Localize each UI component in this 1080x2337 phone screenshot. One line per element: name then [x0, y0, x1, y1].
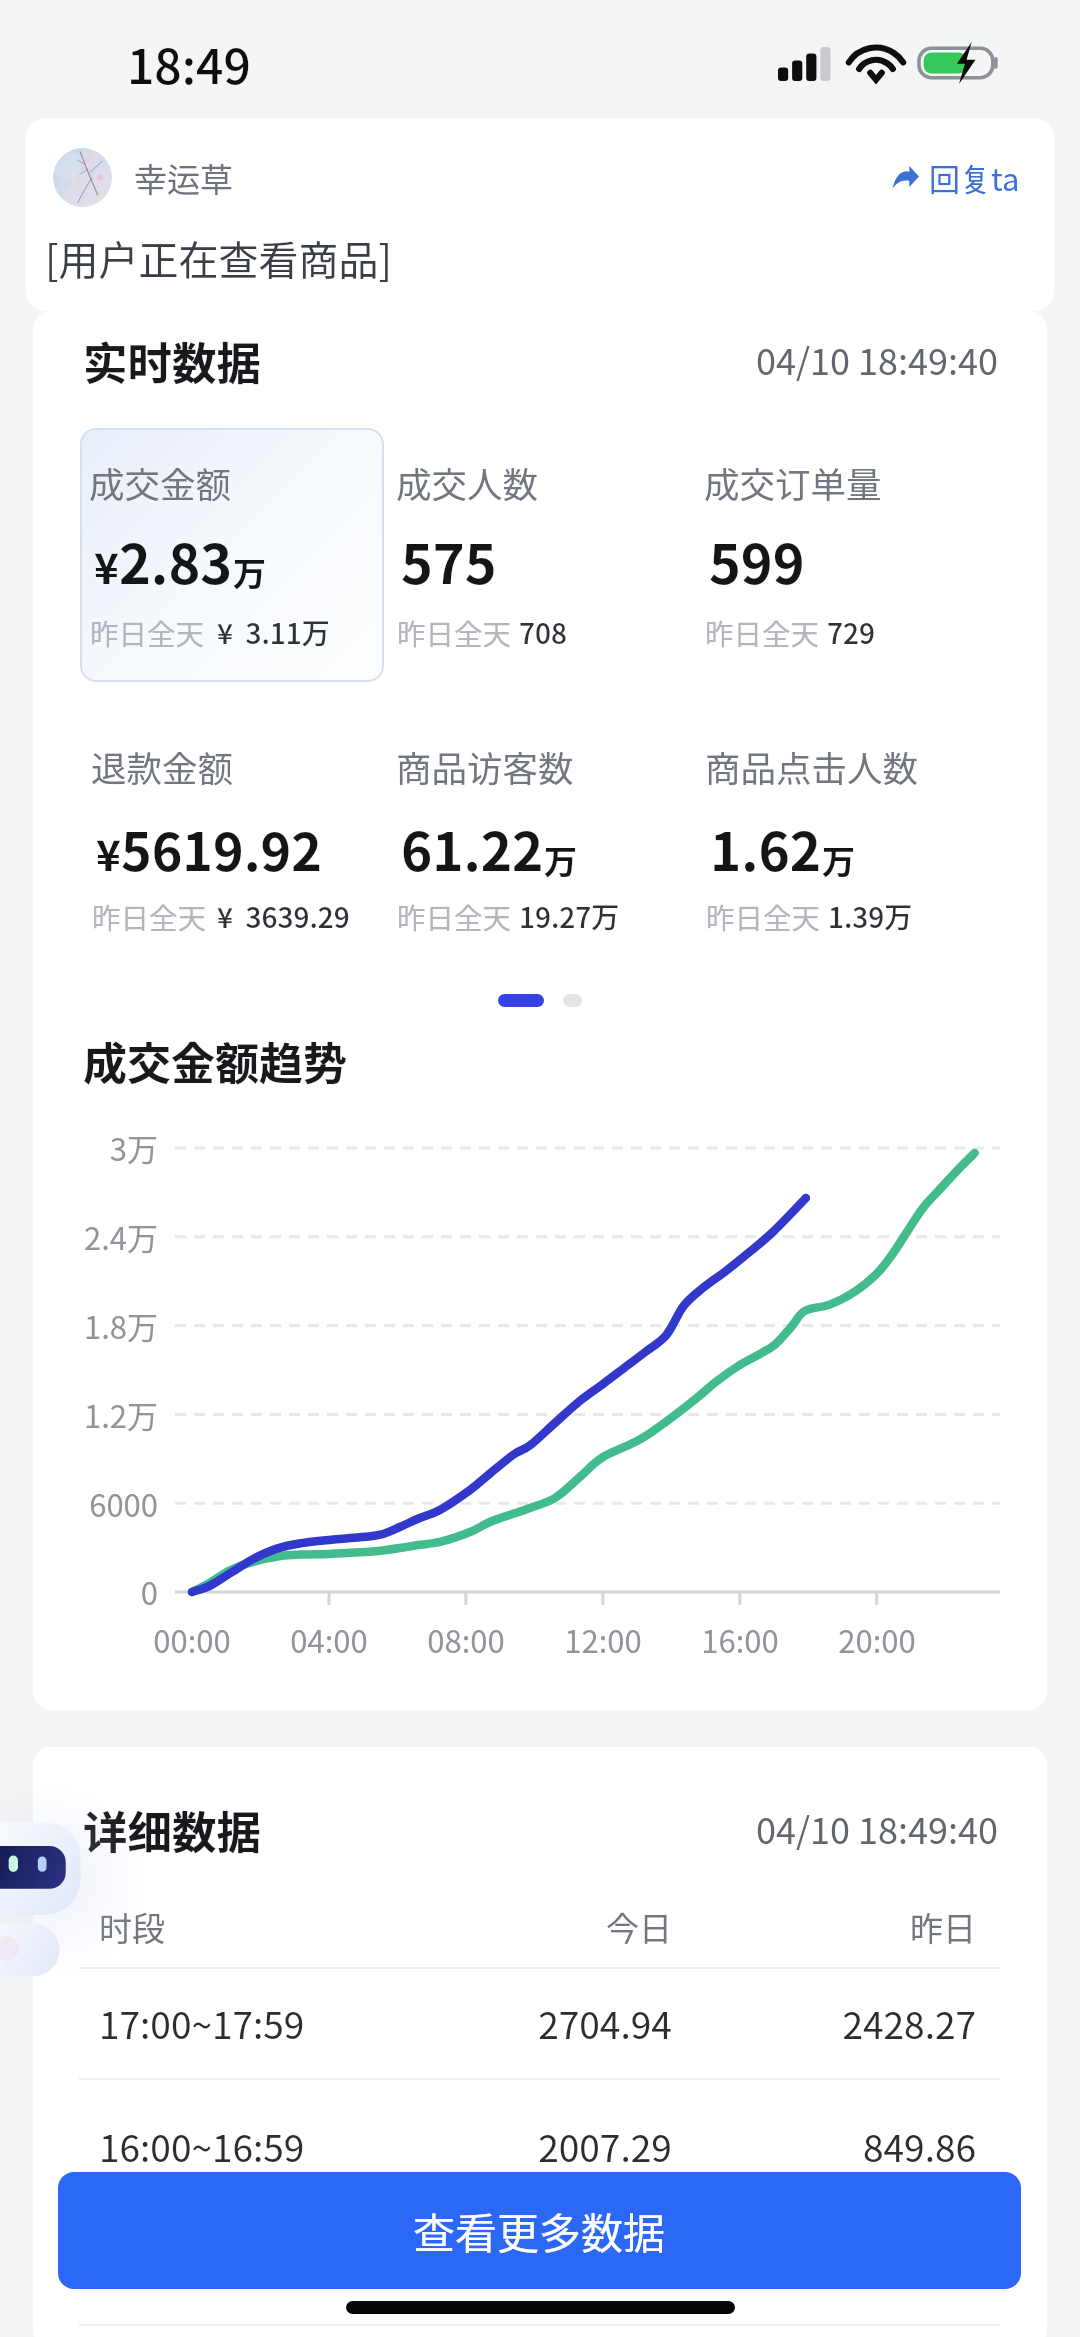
staticText: 849.86 [576, 2119, 976, 2173]
button[interactable] [80, 428, 384, 682]
staticText: 729 [827, 612, 875, 653]
staticText: 3万 [33, 1125, 158, 1170]
staticText: 详细数据 [83, 1797, 262, 1861]
staticText: 查看更多数据 [413, 2200, 666, 2261]
button[interactable]: Reply [892, 155, 1020, 200]
staticText: 成交金额趋势 [83, 1029, 347, 1093]
staticText: 昨日 [576, 1903, 976, 1951]
staticText: 0 [33, 1569, 158, 1614]
staticText: 575 [401, 521, 497, 599]
staticText: 08:00 [376, 1617, 556, 1662]
staticText: ¥ 3.11万 [217, 612, 330, 653]
staticText: 昨日全天 [706, 896, 821, 937]
staticText: 1.2万 [33, 1392, 158, 1437]
staticText: 2428.27 [576, 1996, 976, 2050]
staticText: 2.4万 [33, 1214, 158, 1259]
staticText: 成交人数 [396, 457, 539, 508]
button[interactable]: 查看更多数据 [58, 2172, 1021, 2289]
other: Reply [892, 166, 919, 190]
button[interactable] [79, 1968, 1000, 2078]
staticText: 退款金额 [91, 741, 234, 792]
staticText: 04/10 18:49:40 [33, 333, 998, 385]
staticText: 昨日全天 [397, 896, 512, 937]
staticText: [用户正在查看商品] [45, 229, 393, 287]
staticText: ¥ [96, 822, 121, 883]
button[interactable] [79, 2091, 1000, 2201]
staticText: ¥ 3639.29 [217, 896, 350, 937]
staticText: 12:00 [513, 1617, 693, 1662]
staticText: 16:00~16:59 [99, 2119, 305, 2173]
staticText: 成交金额 [89, 457, 232, 508]
staticText: 2007.29 [405, 2119, 805, 2173]
staticText: 成交订单量 [704, 457, 882, 508]
staticText: 昨日全天 [90, 612, 205, 653]
staticText: 万 [544, 836, 577, 884]
staticText: 昨日全天 [92, 896, 207, 937]
staticText: 04/10 18:49:40 [33, 1802, 998, 1854]
staticText: 5619.92 [121, 811, 322, 886]
staticText: 599 [709, 521, 805, 599]
staticText: 1.62 [710, 810, 822, 887]
button[interactable]: Page 2 [563, 994, 582, 1007]
staticText: 708 [519, 612, 567, 653]
staticText: 昨日全天 [705, 612, 820, 653]
staticText: 1.8万 [33, 1303, 158, 1348]
staticText: 16:00 [650, 1617, 830, 1662]
button[interactable]: Page 1 [498, 994, 544, 1007]
staticText: 2.83 [119, 521, 233, 599]
staticText: 时段 [99, 1903, 165, 1951]
staticText: 商品点击人数 [705, 741, 919, 792]
staticText: 万 [233, 548, 266, 596]
staticText: 61.22 [401, 810, 544, 887]
staticText: 幸运草 [134, 154, 233, 202]
staticText: 1.39万 [828, 896, 913, 937]
staticText: 2704.94 [405, 1996, 805, 2050]
staticText: 昨日全天 [397, 612, 512, 653]
staticText: 18:49 [127, 28, 251, 98]
staticText: 17:00~17:59 [99, 1996, 305, 2050]
staticText: 商品访客数 [396, 741, 574, 792]
staticText: 6000 [33, 1481, 158, 1526]
staticText: 20:00 [787, 1617, 967, 1662]
staticText: 今日 [439, 1903, 839, 1951]
staticText: 回复ta [929, 155, 1020, 200]
staticText: ¥ [94, 535, 119, 596]
staticText: 00:00 [102, 1617, 282, 1662]
staticText: 04:00 [239, 1617, 419, 1662]
staticText: 万 [822, 836, 855, 884]
button[interactable]: 幸运草 [26, 118, 1054, 311]
staticText: 19.27万 [519, 896, 620, 937]
staticText: 实时数据 [83, 328, 262, 392]
